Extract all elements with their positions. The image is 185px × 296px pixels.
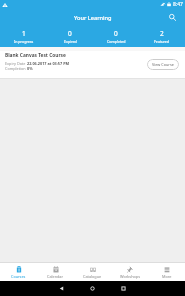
staticText: Catalogue <box>83 274 102 279</box>
staticText: Blank Canvas Test Course <box>5 52 66 59</box>
staticText: Courses <box>11 274 26 279</box>
button[interactable]: More <box>148 263 185 281</box>
button[interactable]: Courses <box>0 263 37 281</box>
other: Back <box>59 286 64 291</box>
staticText: 22.06.2017 at 03:57 PM <box>27 61 70 66</box>
button[interactable]: Catalogue <box>74 263 111 281</box>
staticText: In progress <box>14 39 34 44</box>
staticText: Expiry Date <box>5 61 27 66</box>
button[interactable]: Blank Canvas Test Course <box>0 51 185 78</box>
button[interactable]: Calendar <box>37 263 74 281</box>
staticText: Your Learning <box>74 14 112 22</box>
other: Home <box>90 286 95 291</box>
staticText: 1 <box>22 29 26 38</box>
staticText: More <box>162 274 172 279</box>
button[interactable]: 1 <box>0 28 47 47</box>
button[interactable]: 0 <box>93 28 139 47</box>
staticText: 0 <box>114 29 118 38</box>
button[interactable]: 0 <box>47 28 93 47</box>
staticText: Calendar <box>47 274 64 279</box>
button[interactable]: View Course <box>147 59 179 70</box>
button[interactable]: Workshops <box>111 263 148 281</box>
staticText: Completion <box>5 66 27 71</box>
button[interactable]: Search <box>163 8 182 27</box>
staticText: Featured <box>154 39 170 44</box>
other: Recents <box>121 286 126 291</box>
staticText: Completed <box>107 39 126 44</box>
staticText: 8:47 <box>173 1 183 8</box>
staticText: 0 <box>68 29 72 38</box>
staticText: 2 <box>160 29 164 38</box>
staticText: Workshops <box>120 274 140 279</box>
staticText: 0% <box>27 66 33 71</box>
staticText: Expired <box>64 39 77 44</box>
button[interactable]: 2 <box>139 28 185 47</box>
staticText: View Course <box>152 62 174 67</box>
